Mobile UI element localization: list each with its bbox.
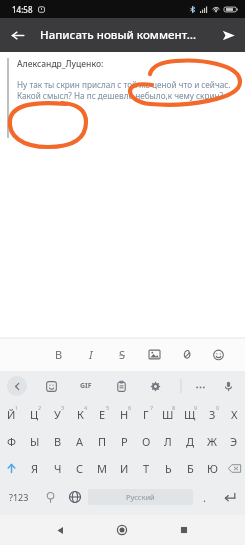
staticText: 9 bbox=[194, 404, 198, 411]
button[interactable]: Д bbox=[179, 428, 201, 455]
button[interactable]: И bbox=[113, 455, 135, 482]
staticText: Ь bbox=[165, 461, 172, 476]
button[interactable]: Т bbox=[135, 455, 157, 482]
button[interactable]: Home bbox=[108, 516, 136, 544]
staticText: . bbox=[203, 490, 206, 505]
staticText: 3 bbox=[61, 404, 65, 411]
staticText: 8 bbox=[172, 404, 176, 411]
staticText: ?123 bbox=[9, 491, 29, 503]
button[interactable]: Х bbox=[223, 401, 245, 428]
button[interactable]: Ч bbox=[46, 455, 69, 482]
staticText: Г bbox=[143, 407, 149, 422]
staticText: 6 bbox=[128, 404, 132, 411]
staticText: Ну так ты скрин прислал с той же ценой ч… bbox=[17, 79, 237, 102]
staticText: А bbox=[76, 434, 84, 449]
staticText: Ж bbox=[207, 434, 217, 449]
staticText: Й bbox=[7, 407, 16, 422]
staticText: 14:58 bbox=[12, 4, 33, 15]
staticText: В bbox=[54, 434, 62, 449]
button[interactable]: Switch language bbox=[62, 482, 88, 512]
button[interactable]: Ц bbox=[23, 401, 46, 428]
staticText: Х bbox=[231, 407, 238, 422]
button[interactable]: Я bbox=[23, 455, 46, 482]
button[interactable]: Voice input bbox=[218, 376, 238, 396]
button[interactable]: Shift bbox=[0, 455, 23, 482]
button[interactable]: ?123 bbox=[0, 482, 38, 512]
staticText: Русский bbox=[126, 492, 155, 502]
button[interactable]: Ы bbox=[23, 428, 46, 455]
button[interactable]: Insert emoji bbox=[209, 345, 228, 364]
button[interactable]: Attach file bbox=[177, 345, 196, 364]
button[interactable]: Recent apps bbox=[170, 516, 198, 544]
button[interactable]: Ж bbox=[201, 428, 223, 455]
button[interactable]: О bbox=[135, 428, 157, 455]
staticText: Л bbox=[164, 434, 172, 449]
button[interactable]: Щ bbox=[179, 401, 201, 428]
button[interactable]: More options bbox=[190, 376, 210, 396]
button[interactable]: . bbox=[193, 482, 215, 512]
button[interactable]: Ф bbox=[0, 428, 23, 455]
staticText: К bbox=[77, 407, 84, 422]
staticText: З bbox=[209, 407, 216, 422]
button[interactable]: Ш bbox=[157, 401, 179, 428]
staticText: Ч bbox=[54, 461, 62, 476]
button[interactable]: Send bbox=[211, 18, 245, 52]
staticText: B bbox=[55, 347, 63, 362]
button[interactable]: I bbox=[81, 345, 100, 364]
staticText: Д bbox=[186, 434, 195, 449]
button[interactable]: Settings bbox=[145, 376, 165, 396]
staticText: 1 bbox=[15, 404, 19, 411]
button[interactable]: Ю bbox=[201, 455, 223, 482]
button[interactable]: GIF bbox=[75, 375, 97, 397]
button[interactable]: Й bbox=[0, 401, 23, 428]
button[interactable]: Backspace bbox=[223, 455, 245, 482]
button[interactable]: Clipboard bbox=[111, 376, 131, 396]
button[interactable]: Е bbox=[91, 401, 113, 428]
staticText: Александр_Луценко: bbox=[17, 58, 104, 70]
staticText: Э bbox=[230, 434, 238, 449]
staticText: Ю bbox=[207, 461, 218, 476]
button[interactable]: Н bbox=[113, 401, 135, 428]
staticText: 2 bbox=[38, 404, 42, 411]
staticText: GIF bbox=[80, 381, 92, 391]
staticText: Р bbox=[121, 434, 128, 449]
button[interactable]: Back bbox=[46, 516, 74, 544]
staticText: Б bbox=[187, 461, 194, 476]
staticText: S bbox=[119, 347, 126, 362]
staticText: О bbox=[142, 434, 151, 449]
staticText: 0 bbox=[216, 404, 220, 411]
button[interactable]: Collapse toolbar bbox=[7, 376, 27, 396]
staticText: Н bbox=[120, 407, 129, 422]
staticText: I bbox=[89, 347, 93, 362]
button[interactable]: Emoji bbox=[38, 482, 62, 512]
button[interactable]: П bbox=[91, 428, 113, 455]
button[interactable]: М bbox=[91, 455, 113, 482]
button[interactable]: Б bbox=[179, 455, 201, 482]
button[interactable]: С bbox=[69, 455, 91, 482]
staticText: Щ bbox=[184, 407, 196, 422]
staticText: Е bbox=[99, 407, 106, 422]
button[interactable]: У bbox=[46, 401, 69, 428]
button[interactable]: Э bbox=[223, 428, 245, 455]
button[interactable]: А bbox=[69, 428, 91, 455]
staticText: 7 bbox=[150, 404, 154, 411]
button[interactable]: B bbox=[49, 345, 68, 364]
staticText: 4 bbox=[84, 404, 88, 411]
button[interactable]: S bbox=[113, 345, 132, 364]
button[interactable]: Insert image bbox=[145, 345, 164, 364]
button[interactable]: Р bbox=[113, 428, 135, 455]
staticText: П bbox=[98, 434, 107, 449]
button[interactable]: Л bbox=[157, 428, 179, 455]
button[interactable]: З bbox=[201, 401, 223, 428]
button[interactable]: Back bbox=[0, 18, 34, 52]
button[interactable]: Г bbox=[135, 401, 157, 428]
button[interactable]: К bbox=[69, 401, 91, 428]
staticText: Написать новый коммент… bbox=[40, 27, 211, 43]
button[interactable]: Stickers bbox=[41, 376, 61, 396]
button[interactable]: Ь bbox=[157, 455, 179, 482]
button[interactable]: Enter bbox=[215, 482, 245, 512]
staticText: Ф bbox=[7, 434, 16, 449]
button[interactable]: В bbox=[46, 428, 69, 455]
staticText: С bbox=[76, 461, 84, 476]
button[interactable]: Русский bbox=[88, 489, 193, 505]
